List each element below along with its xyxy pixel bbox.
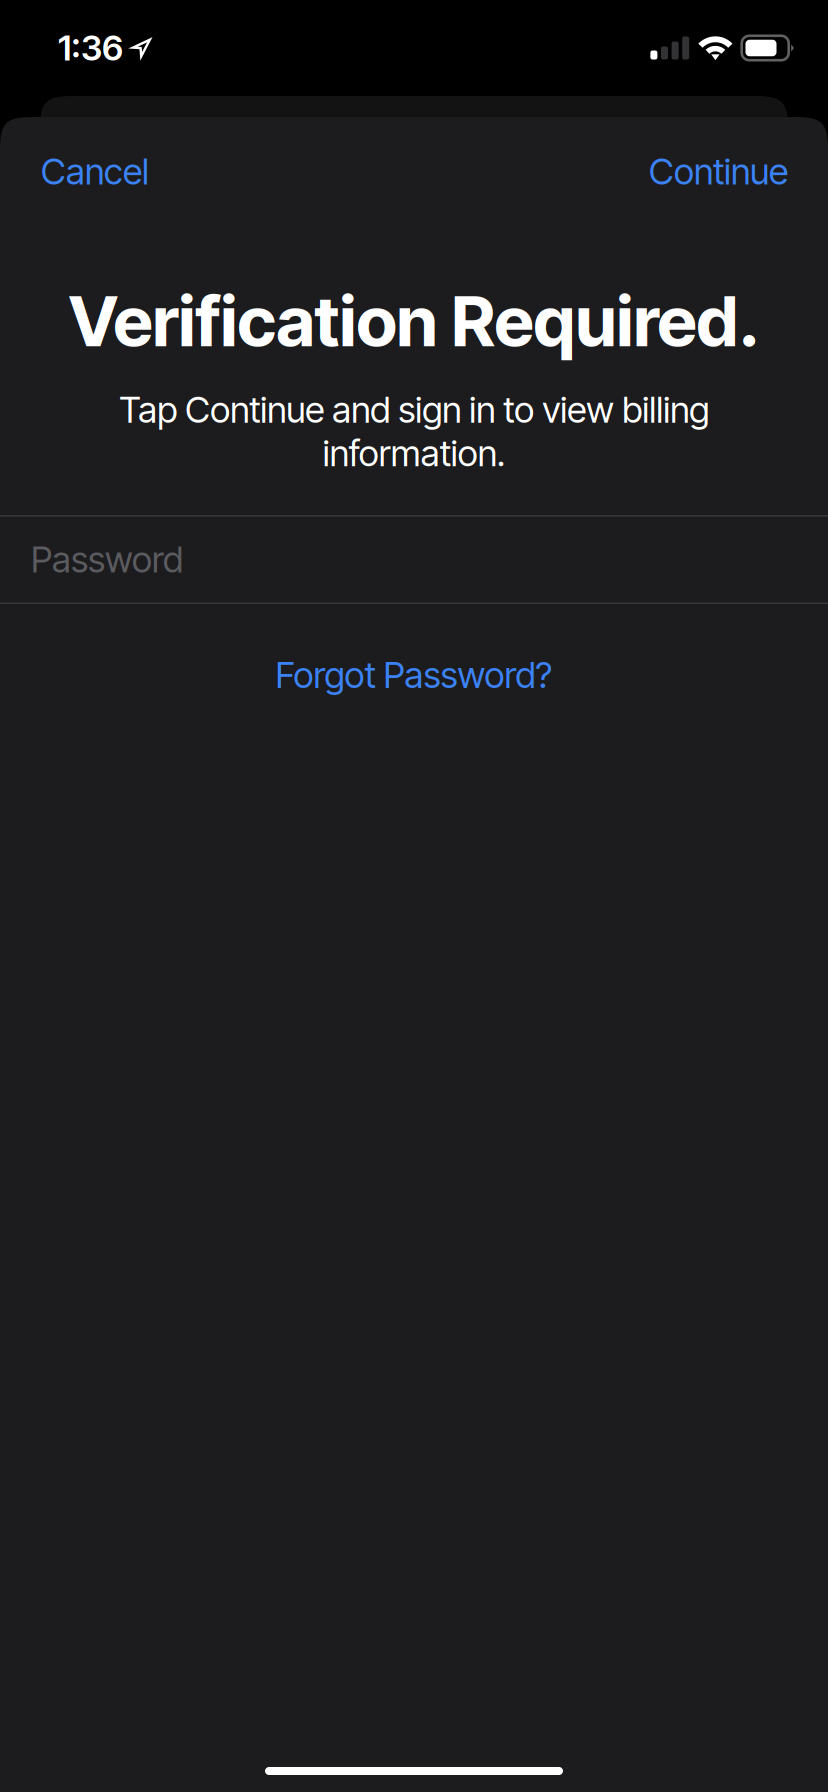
button[interactable]: Cancel bbox=[0, 117, 177, 226]
button[interactable]: Password bbox=[0, 516, 828, 602]
button[interactable]: Forgot Password? bbox=[215, 631, 612, 719]
staticText: Cancel bbox=[41, 150, 149, 193]
staticText: Password bbox=[31, 538, 183, 581]
staticText: Continue bbox=[649, 150, 788, 193]
staticText: Verification Required. bbox=[68, 279, 759, 363]
button[interactable]: Continue bbox=[621, 117, 828, 226]
staticText: Forgot Password? bbox=[275, 653, 552, 697]
staticText: 1:36 bbox=[58, 27, 123, 69]
staticText: Tap Continue and sign in to view billing… bbox=[119, 388, 709, 475]
